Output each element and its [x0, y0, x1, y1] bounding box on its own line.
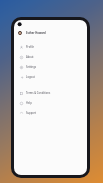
staticText: About — [26, 55, 34, 59]
staticText: Terms & Conditions — [26, 91, 51, 95]
button[interactable]: Help — [14, 98, 87, 108]
staticText: Support — [26, 111, 36, 115]
button[interactable]: Terms & Conditions — [14, 88, 87, 98]
button[interactable]: Settings — [14, 62, 87, 72]
button[interactable]: Profile — [14, 42, 87, 52]
staticText: Esther Howard — [26, 31, 46, 35]
staticText: Profile — [26, 45, 35, 49]
button[interactable]: About — [14, 52, 87, 62]
staticText: Settings — [26, 65, 37, 69]
staticText: Logout — [26, 75, 35, 79]
staticText: Help — [26, 101, 32, 105]
button[interactable]: Support — [14, 108, 87, 118]
button[interactable]: Esther Howard — [14, 29, 87, 37]
button[interactable]: Logout — [14, 72, 87, 82]
